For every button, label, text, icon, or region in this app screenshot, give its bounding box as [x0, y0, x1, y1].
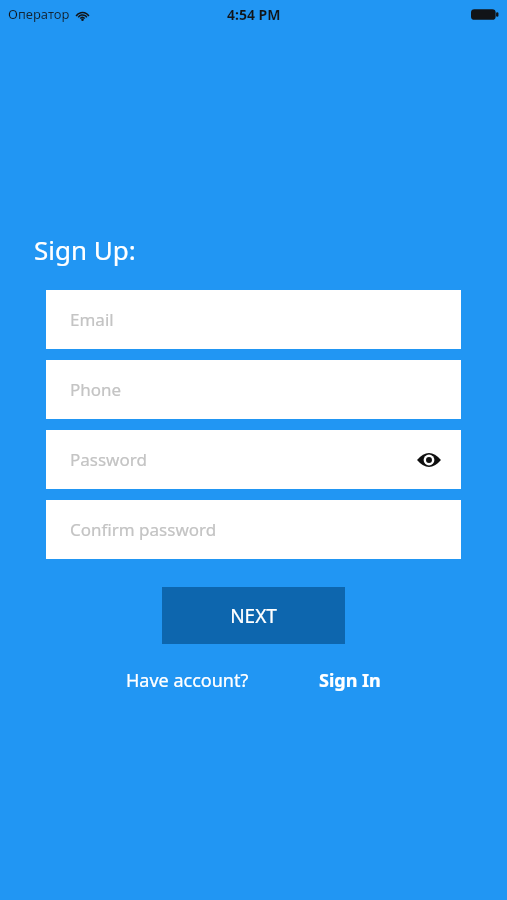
- staticText: Password: [70, 448, 147, 471]
- staticText: Have account?: [126, 668, 249, 693]
- staticText: Sign In: [319, 668, 381, 693]
- button[interactable]: NEXT: [162, 587, 345, 644]
- staticText: NEXT: [230, 603, 277, 629]
- button[interactable]: Email: [46, 290, 461, 349]
- button[interactable]: Sign In: [319, 668, 381, 693]
- staticText: Sign Up:: [34, 232, 136, 267]
- button[interactable]: Confirm password: [46, 500, 461, 559]
- staticText: Phone: [70, 378, 122, 401]
- button[interactable]: Password: [46, 430, 461, 489]
- staticText: Confirm password: [70, 518, 217, 541]
- staticText: 4:54 PM: [227, 5, 281, 24]
- button[interactable]: Have account?: [126, 668, 249, 693]
- staticText: Оператор: [8, 5, 70, 23]
- button[interactable]: Show password: [409, 440, 449, 480]
- staticText: Email: [70, 308, 114, 331]
- button[interactable]: Phone: [46, 360, 461, 419]
